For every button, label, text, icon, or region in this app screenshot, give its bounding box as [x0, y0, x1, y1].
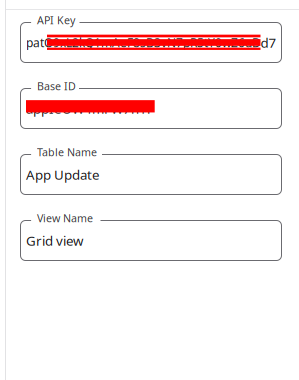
- staticText: Grid view: [26, 232, 83, 249]
- staticText: View Name: [37, 211, 93, 225]
- staticText: App Update: [26, 166, 100, 183]
- staticText: Table Name: [37, 145, 97, 159]
- button[interactable]: Grid view: [20, 220, 281, 260]
- button[interactable]: patO9xL2kQ1mAeF8sB3vN7pR5tY0wZ6uD4jH2gC1…: [20, 22, 281, 62]
- button[interactable]: appIeUW4mFW7n1l: [20, 88, 281, 128]
- staticText: patO9xL2kQ1mAeF8sB3vN7pR5tY0wZ6uD4jH2gC1…: [26, 34, 299, 50]
- staticText: appIeUW4mFW7n1l: [26, 100, 150, 117]
- staticText: API Key: [37, 13, 75, 27]
- staticText: Base ID: [37, 79, 76, 93]
- staticText: d7.: [260, 34, 280, 51]
- button[interactable]: App Update: [20, 154, 281, 194]
